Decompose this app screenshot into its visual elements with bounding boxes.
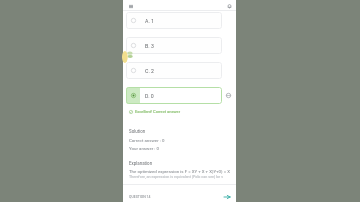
- staticText: Therefore, an expression is equivalent (…: [129, 175, 223, 179]
- staticText: The optimized expression is F = XY + X +…: [129, 169, 230, 174]
- staticText: Your answer : 0: [129, 146, 159, 151]
- staticText: C. 2: [145, 68, 154, 74]
- staticText: QUESTION 14: [129, 195, 151, 199]
- staticText: Correct answer : 0: [129, 138, 165, 143]
- staticText: Excellent! Correct answer: [135, 109, 181, 114]
- button[interactable]: Notifications: [225, 2, 233, 10]
- button[interactable]: B. 3: [126, 37, 222, 54]
- button[interactable]: D. 0: [126, 87, 222, 104]
- staticText: A. 1: [145, 18, 154, 24]
- button[interactable]: Explanation info: [224, 91, 233, 100]
- button[interactable]: A. 1: [126, 12, 222, 29]
- staticText: B. 3: [145, 43, 154, 49]
- button[interactable]: C. 2: [126, 62, 222, 79]
- staticText: Solution: [129, 129, 146, 134]
- staticText: D. 0: [145, 93, 154, 99]
- button[interactable]: Menu: [127, 2, 135, 10]
- staticText: Explanation: [129, 161, 153, 166]
- button[interactable]: Next question: [222, 192, 231, 201]
